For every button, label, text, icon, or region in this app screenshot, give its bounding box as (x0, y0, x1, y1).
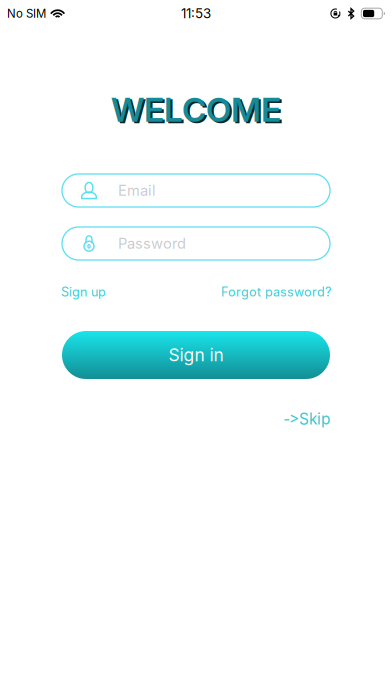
staticText: No SIM (7, 7, 46, 20)
staticText: Sign up (61, 284, 106, 300)
staticText: Password (118, 235, 186, 252)
staticText: Forgot password? (221, 284, 331, 300)
staticText: Sign in (168, 344, 223, 365)
button[interactable]: Forgot password? (221, 284, 331, 300)
staticText: WELCOME (113, 91, 283, 131)
staticText: Email (118, 182, 156, 199)
staticText: ‐>Skip (284, 410, 330, 428)
staticText: WELCOME (111, 89, 281, 130)
button[interactable]: Sign up (61, 284, 106, 300)
staticText: 11:53 (181, 5, 211, 21)
button[interactable]: ‐>Skip (284, 410, 330, 428)
button[interactable]: Sign in (62, 331, 330, 379)
